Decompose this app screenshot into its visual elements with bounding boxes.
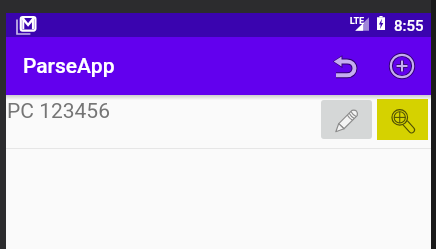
button[interactable]: Undo [321, 43, 367, 89]
staticText: LTE [350, 16, 365, 26]
staticText: 8:55 [394, 17, 424, 35]
button[interactable]: Search [377, 99, 428, 140]
staticText: ParseApp [23, 54, 115, 79]
button[interactable]: Edit [321, 100, 372, 139]
staticText: PC 123456 [7, 99, 110, 124]
button[interactable]: Add [379, 43, 425, 89]
